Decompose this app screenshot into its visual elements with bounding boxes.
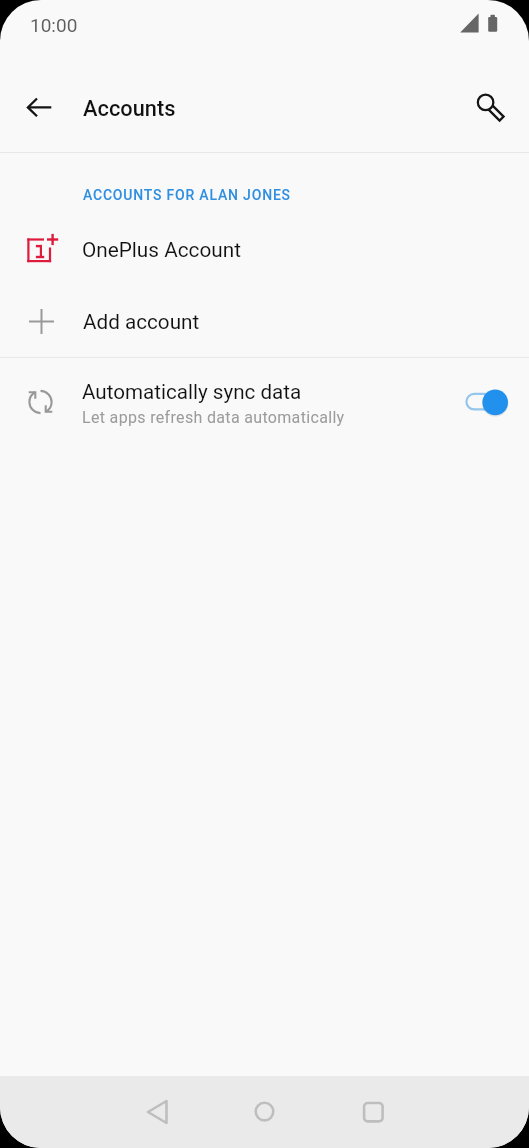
button[interactable]: Automatically sync data	[0, 358, 529, 448]
button[interactable]: OnePlus Account	[0, 216, 529, 286]
staticText: Add account	[83, 310, 200, 334]
button[interactable]: Add account	[0, 286, 529, 356]
button[interactable]: Back	[129, 1086, 183, 1140]
button[interactable]: Recent apps	[346, 1086, 400, 1140]
staticText: Automatically sync data	[82, 380, 302, 404]
staticText: ACCOUNTS FOR ALAN JONES	[83, 187, 291, 203]
button[interactable]: Back	[16, 84, 62, 130]
staticText: Let apps refresh data automatically	[82, 408, 345, 427]
button[interactable]: Home	[237, 1086, 291, 1140]
button[interactable]: Search	[466, 84, 510, 128]
staticText: 10:00	[30, 14, 78, 36]
staticText: OnePlus Account	[82, 238, 241, 262]
button[interactable]: Automatically sync data	[456, 382, 508, 424]
staticText: Accounts	[83, 96, 176, 122]
